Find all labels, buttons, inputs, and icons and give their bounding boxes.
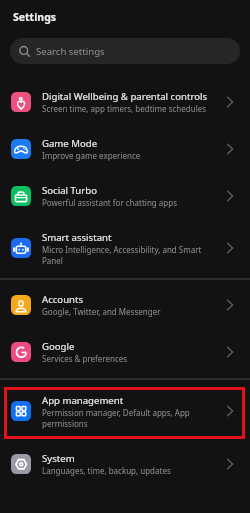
staticText: Social Turbo (42, 184, 97, 197)
staticText: Services & preferences (42, 353, 128, 364)
button[interactable]: Google (0, 328, 250, 375)
staticText: Accounts (42, 293, 84, 306)
button[interactable]: System (0, 440, 250, 487)
button[interactable]: Search settings (10, 38, 240, 64)
staticText: Google, Twitter, and Messenger (42, 306, 161, 317)
button[interactable]: Game Mode (0, 125, 250, 172)
button[interactable]: Digital Wellbeing & parental controls (0, 78, 250, 125)
staticText: Improve game experience (42, 150, 141, 161)
staticText: Digital Wellbeing & parental controls (42, 90, 208, 103)
staticText: Powerful assistant for chatting apps (42, 197, 177, 208)
staticText: Screen time, app timers, bedtime schedul… (42, 103, 207, 114)
staticText: Game Mode (42, 137, 98, 150)
button[interactable]: Smart assistant (0, 219, 250, 277)
staticText: App management (42, 394, 124, 407)
staticText: Micro Intelligence, Accessibility, and S… (42, 244, 212, 266)
button[interactable]: App management (0, 382, 250, 440)
staticText: Settings (13, 10, 57, 24)
staticText: Google (42, 340, 75, 353)
button[interactable]: Accounts (0, 281, 250, 328)
staticText: Smart assistant (42, 231, 112, 244)
button[interactable]: Social Turbo (0, 172, 250, 219)
staticText: System (42, 452, 75, 465)
staticText: Search settings (36, 45, 105, 58)
staticText: Languages, time, backup, updates (42, 465, 171, 476)
staticText: Permission manager, Default apps, App pe… (42, 407, 212, 429)
